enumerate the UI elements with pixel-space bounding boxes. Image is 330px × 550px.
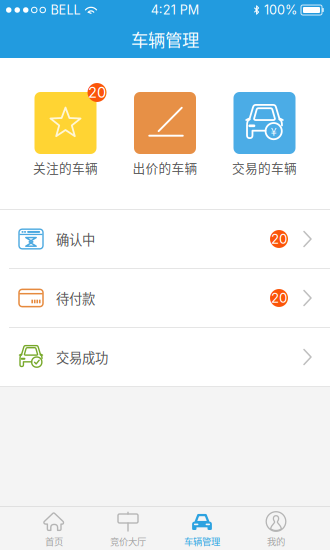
staticText: 交易的车辆 xyxy=(232,158,297,177)
button[interactable]: 20 xyxy=(16,58,115,209)
staticText: 关注的车辆 xyxy=(33,158,98,177)
staticText: 车辆管理 xyxy=(131,26,199,52)
staticText: 首页 xyxy=(45,534,63,548)
staticText: 100% xyxy=(264,2,297,18)
staticText: 20 xyxy=(88,84,106,101)
staticText: 竞价大厅 xyxy=(110,534,146,548)
staticText: 车辆管理 xyxy=(184,534,220,548)
staticText: ¥ xyxy=(271,123,277,139)
staticText: 交易成功 xyxy=(56,347,108,367)
button[interactable]: 我的 xyxy=(239,506,313,550)
staticText: 确认中 xyxy=(56,229,95,249)
button[interactable]: 待付款 xyxy=(0,269,330,327)
button[interactable]: 交易成功 xyxy=(0,328,330,386)
button[interactable]: 车辆管理 xyxy=(165,506,239,550)
button[interactable]: 首页 xyxy=(17,506,91,550)
staticText: BELL xyxy=(50,2,80,18)
staticText: 待付款 xyxy=(56,288,95,308)
button[interactable]: ¥ xyxy=(215,58,314,209)
staticText: 我的 xyxy=(267,534,285,548)
button[interactable]: 竞价大厅 xyxy=(91,506,165,550)
staticText: 出价的车辆 xyxy=(132,158,197,177)
staticText: 20 xyxy=(271,231,287,247)
button[interactable]: 出价的车辆 xyxy=(115,58,215,209)
staticText: 4:21 PM xyxy=(151,2,199,18)
staticText: 20 xyxy=(271,290,287,306)
button[interactable]: 确认中 xyxy=(0,210,330,268)
